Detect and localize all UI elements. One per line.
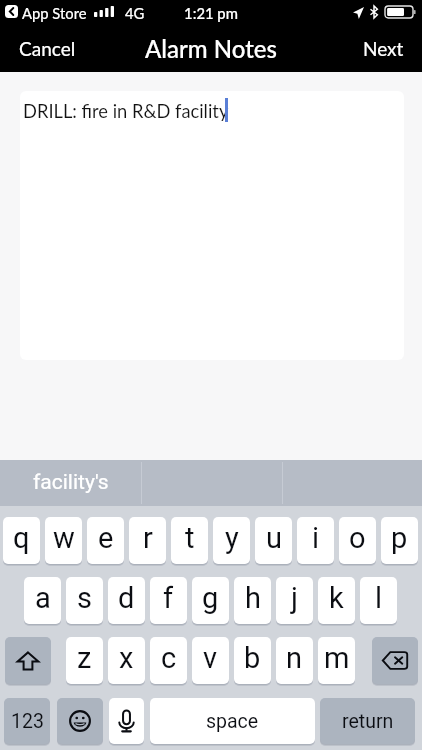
button[interactable]: Emoji bbox=[57, 698, 103, 744]
button[interactable]: t bbox=[171, 517, 208, 564]
staticText: r bbox=[143, 521, 153, 555]
staticText: b bbox=[244, 641, 261, 675]
button[interactable]: l bbox=[360, 577, 397, 624]
staticText: space bbox=[206, 710, 259, 733]
staticText: Alarm Notes bbox=[145, 34, 277, 63]
button[interactable]: f bbox=[150, 577, 187, 624]
staticText: p bbox=[391, 521, 408, 555]
staticText: j bbox=[291, 581, 298, 615]
staticText: s bbox=[77, 581, 92, 615]
staticText: m bbox=[324, 641, 350, 675]
staticText: f bbox=[163, 581, 174, 615]
button[interactable]: return bbox=[320, 698, 415, 744]
staticText: t bbox=[185, 521, 195, 555]
button[interactable]: z bbox=[66, 637, 103, 684]
button[interactable]: y bbox=[213, 517, 250, 564]
button[interactable]: a bbox=[24, 577, 61, 624]
button[interactable]: space bbox=[150, 698, 315, 744]
staticText: facility's bbox=[33, 470, 109, 495]
button[interactable]: Next bbox=[354, 32, 413, 69]
staticText: h bbox=[245, 581, 261, 615]
button[interactable]: Shift bbox=[5, 637, 51, 684]
button[interactable]: b bbox=[234, 637, 271, 684]
staticText: o bbox=[349, 521, 366, 555]
button[interactable]: facility's bbox=[0, 460, 140, 506]
button[interactable]: q bbox=[3, 517, 40, 564]
staticText: Next bbox=[363, 37, 404, 60]
staticText: q bbox=[13, 521, 30, 555]
staticText: d bbox=[118, 581, 135, 615]
button[interactable]: p bbox=[381, 517, 418, 564]
button[interactable]: r bbox=[129, 517, 166, 564]
staticText: 1:21 pm bbox=[0, 4, 422, 22]
button[interactable]: k bbox=[318, 577, 355, 624]
button[interactable]: h bbox=[234, 577, 271, 624]
button[interactable]: Dictate bbox=[109, 698, 144, 744]
staticText: Cancel bbox=[19, 37, 76, 60]
button[interactable]: c bbox=[150, 637, 187, 684]
button[interactable]: i bbox=[297, 517, 334, 564]
staticText: z bbox=[77, 641, 92, 675]
button[interactable]: u bbox=[255, 517, 292, 564]
staticText: DRILL: fire in R&D facility bbox=[23, 100, 229, 122]
button[interactable]: w bbox=[45, 517, 82, 564]
staticText: e bbox=[98, 521, 114, 555]
button[interactable]: o bbox=[339, 517, 376, 564]
button[interactable]: s bbox=[66, 577, 103, 624]
button[interactable]: d bbox=[108, 577, 145, 624]
button[interactable]: m bbox=[318, 637, 355, 684]
button[interactable]: 123 bbox=[4, 698, 50, 744]
staticText: y bbox=[225, 521, 239, 555]
staticText: c bbox=[161, 641, 177, 675]
button[interactable]: j bbox=[276, 577, 313, 624]
staticText: l bbox=[375, 581, 383, 615]
button[interactable]: n bbox=[276, 637, 313, 684]
staticText: x bbox=[119, 641, 134, 675]
staticText: 4G bbox=[125, 4, 145, 22]
staticText: v bbox=[203, 641, 218, 675]
staticText: n bbox=[286, 641, 303, 675]
staticText: u bbox=[266, 521, 282, 555]
button[interactable]: DRILL: fire in R&D facility bbox=[20, 91, 404, 360]
button[interactable]: g bbox=[192, 577, 229, 624]
staticText: App Store bbox=[22, 4, 87, 22]
staticText: 123 bbox=[11, 710, 44, 733]
button[interactable]: Back to App Store bbox=[5, 5, 18, 18]
button[interactable]: v bbox=[192, 637, 229, 684]
button[interactable]: x bbox=[108, 637, 145, 684]
staticText: g bbox=[202, 581, 219, 615]
button[interactable]: e bbox=[87, 517, 124, 564]
staticText: return bbox=[342, 710, 394, 733]
button[interactable]: Cancel bbox=[9, 32, 86, 69]
staticText: a bbox=[35, 581, 51, 615]
staticText: i bbox=[312, 521, 320, 555]
button[interactable]: Backspace bbox=[372, 637, 418, 684]
staticText: k bbox=[329, 581, 344, 615]
staticText: w bbox=[53, 521, 75, 555]
